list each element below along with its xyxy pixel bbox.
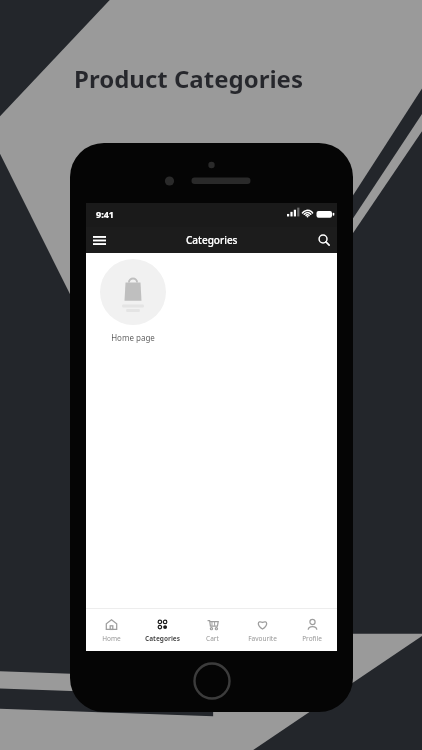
button[interactable]: Home (86, 609, 137, 651)
button[interactable]: Search (311, 227, 337, 253)
button[interactable]: Cart (187, 609, 237, 651)
staticText: Product Categories (74, 62, 303, 95)
staticText: Categories (186, 233, 238, 247)
staticText: Home (102, 634, 121, 643)
staticText: Home page (98, 332, 168, 343)
button[interactable]: Menu (86, 227, 112, 253)
staticText: Favourite (248, 634, 277, 643)
staticText: Categories (145, 634, 180, 643)
staticText: 9:41 (96, 208, 114, 220)
button[interactable]: Categories (137, 609, 187, 651)
button[interactable]: Profile (287, 609, 337, 651)
button[interactable]: Home page (98, 259, 168, 343)
staticText: Profile (302, 634, 322, 643)
button[interactable]: Favourite (237, 609, 287, 651)
staticText: Cart (206, 634, 219, 643)
